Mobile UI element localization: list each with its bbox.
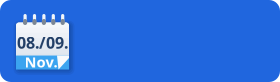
staticText: Nov. — [24, 52, 57, 71]
staticText: 08./09. — [17, 32, 68, 53]
button[interactable]: 08./09. November — [0, 0, 280, 82]
